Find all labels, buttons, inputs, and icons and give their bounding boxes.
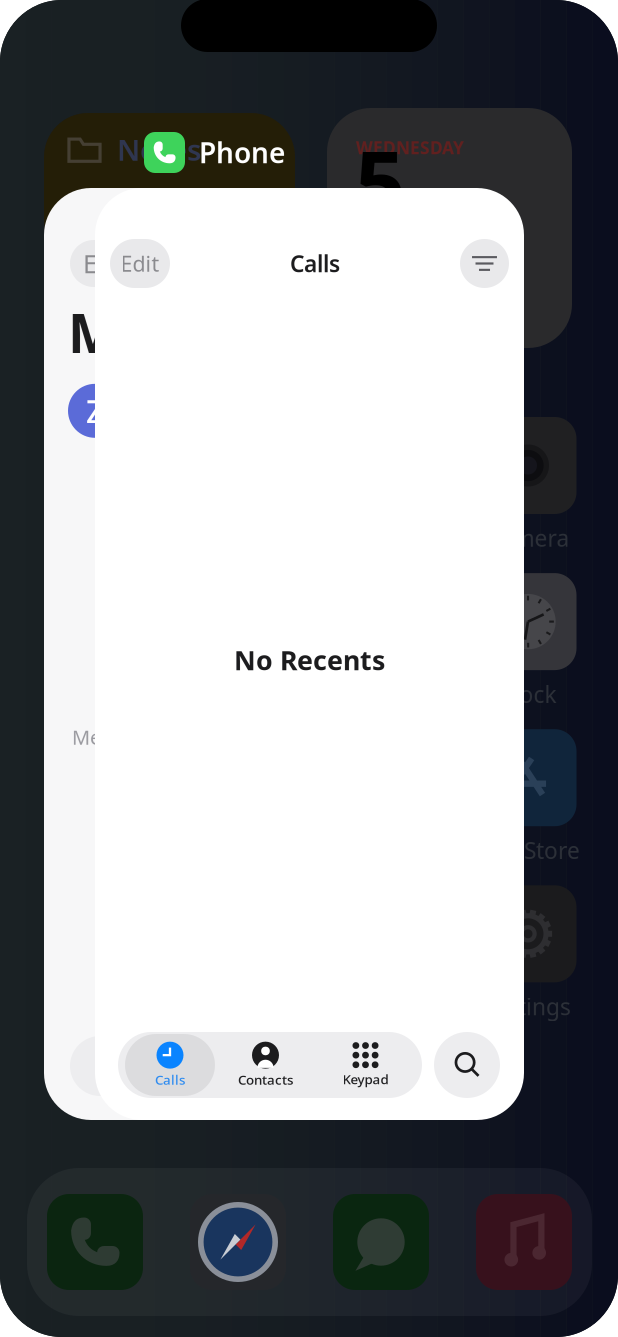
staticText: Keypad [342, 1070, 388, 1088]
staticText: 5 [355, 122, 405, 239]
staticText: Calls [290, 248, 340, 278]
staticText: Messages [72, 724, 165, 750]
button[interactable]: Search [434, 1032, 500, 1098]
staticText: WEDNESDAY [356, 136, 464, 159]
staticText: Edit [120, 249, 159, 278]
button[interactable]: Edit [95, 188, 524, 1120]
staticText: Phone [199, 134, 285, 171]
button[interactable]: Phone [144, 132, 285, 173]
staticText: Messages [68, 297, 329, 368]
staticText: Z [86, 390, 104, 432]
staticText: No Recents [234, 642, 385, 678]
staticText: Settings [485, 991, 571, 1021]
button[interactable]: Contacts [215, 1034, 316, 1096]
staticText: App Store [476, 835, 580, 865]
button[interactable]: Edit [44, 188, 473, 1120]
button[interactable]: Calls [125, 1034, 215, 1096]
staticText: Calls [155, 1071, 185, 1088]
staticText: Edit [83, 247, 129, 280]
staticText: Camera [486, 523, 569, 553]
button[interactable]: Keypad [316, 1034, 415, 1096]
staticText: Notes [117, 130, 201, 169]
button[interactable]: Filter calls [460, 239, 509, 288]
button[interactable]: Edit [110, 239, 170, 288]
staticText: Clock [499, 679, 556, 709]
staticText: Contacts [238, 1071, 293, 1088]
